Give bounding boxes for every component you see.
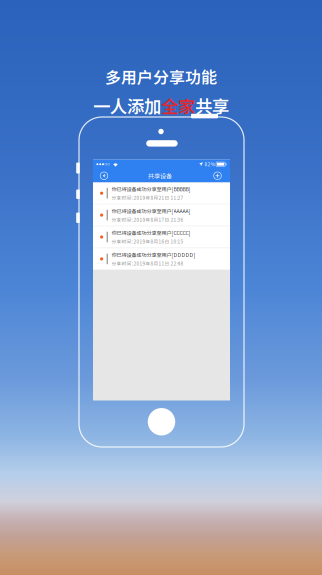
staticText: 一人添加 [93, 93, 161, 118]
staticText: 多用户分享功能 [105, 65, 217, 88]
staticText: 你已将设备成功分享至用户[DDDDD] [111, 251, 195, 258]
staticText: 共享 [195, 93, 229, 118]
staticText: 分享时间: 2019年8月16日 10:15 [111, 238, 183, 245]
button[interactable]: 你已将设备成功分享至用户[AAAAA] [93, 204, 230, 226]
staticText: 你已将设备成功分享至用户[CCCCC] [111, 229, 190, 236]
staticText: 82% [204, 161, 214, 168]
staticText: 全家 [161, 93, 195, 118]
button[interactable]: 你已将设备成功分享至用户[CCCCC] [93, 226, 230, 248]
staticText: 分享时间: 2019年8月21日 11:27 [111, 194, 183, 201]
staticText: 分享时间: 2019年8月17日 21:36 [111, 216, 183, 223]
button[interactable]: 你已将设备成功分享至用户[BBBBB] [93, 182, 230, 204]
staticText: 分享时间: 2019年8月11日 22:48 [111, 260, 183, 267]
button[interactable]: Add device [205, 169, 230, 182]
staticText: 你已将设备成功分享至用户[BBBBB] [111, 185, 190, 193]
button[interactable]: 你已将设备成功分享至用户[DDDDD] [93, 248, 230, 270]
staticText: 你已将设备成功分享至用户[AAAAA] [111, 207, 190, 215]
button[interactable]: Back [93, 169, 115, 182]
staticText: 共享设备 [148, 171, 172, 180]
